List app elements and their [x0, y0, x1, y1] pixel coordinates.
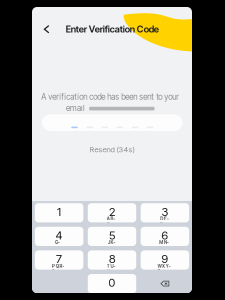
staticText: DEF: [160, 216, 169, 222]
button[interactable]: 8: [88, 250, 136, 270]
staticText: 6: [161, 228, 168, 242]
staticText: 8: [109, 252, 115, 266]
button[interactable]: 6: [141, 227, 189, 246]
staticText: 1: [57, 205, 61, 219]
staticText: TUV: [107, 263, 117, 269]
button[interactable]: 7: [35, 250, 83, 270]
staticText: 4: [56, 228, 63, 242]
staticText: 5: [109, 228, 115, 242]
staticText: 3: [161, 205, 168, 219]
staticText: 2: [109, 205, 115, 219]
button[interactable]: Back: [37, 19, 57, 39]
staticText: ABC: [107, 216, 117, 222]
button[interactable]: Resend (34s): [32, 144, 192, 154]
staticText: PQRS: [52, 263, 66, 269]
button[interactable]: 3: [141, 203, 189, 222]
staticText: email: [66, 103, 85, 113]
staticText: Resend (34s): [89, 145, 134, 154]
button[interactable]: 1: [35, 203, 83, 222]
staticText: MNO: [159, 240, 170, 245]
button[interactable]: 5: [88, 227, 136, 246]
staticText: A verification code has been sent to you…: [41, 92, 179, 102]
staticText: 9: [161, 252, 168, 266]
staticText: JKL: [108, 240, 116, 245]
staticText: 0: [108, 276, 115, 289]
button[interactable]: 9: [141, 250, 189, 270]
staticText: GHI: [55, 240, 63, 245]
button[interactable]: Delete: [141, 274, 189, 293]
staticText: 7: [56, 252, 62, 266]
staticText: Enter Verification Code: [66, 24, 159, 35]
button[interactable]: 4: [35, 227, 83, 246]
button[interactable]: 0: [88, 274, 136, 293]
button[interactable]: 2: [88, 203, 136, 222]
staticText: WXYZ: [157, 263, 172, 269]
